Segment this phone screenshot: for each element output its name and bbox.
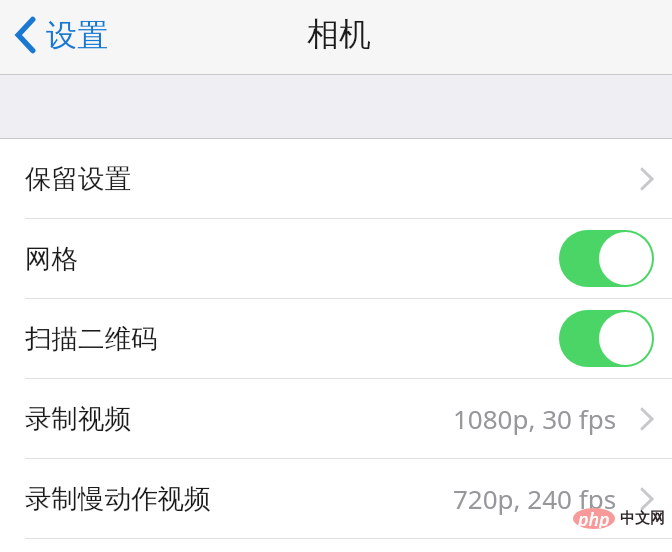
staticText: php [578,507,610,528]
button[interactable]: 网格 [559,230,654,287]
button[interactable]: 录制视频 [0,379,672,458]
staticText: 扫描二维码 [25,322,158,355]
staticText: 录制慢动作视频 [25,482,211,515]
staticText: 设置 [46,16,108,55]
staticText: 保留设置 [25,162,131,195]
button[interactable]: 设置 [0,13,116,57]
button[interactable]: 网格 [0,219,672,298]
button[interactable]: 扫描二维码 [0,299,672,378]
staticText: 网格 [25,242,78,275]
button[interactable]: 录制慢动作视频 [0,459,672,538]
staticText: 1080p, 30 fps [453,401,617,436]
button[interactable]: 扫描二维码 [559,310,654,367]
staticText: 相机 [307,14,371,54]
staticText: 720p, 240 fps [453,481,617,516]
button[interactable]: 保留设置 [0,139,672,218]
staticText: 录制视频 [25,402,131,435]
staticText: 中文网 [620,509,665,528]
